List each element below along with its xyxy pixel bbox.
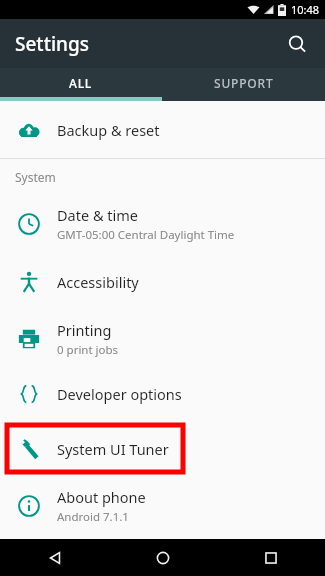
staticText: Developer options [57,384,182,404]
staticText: Settings [15,31,89,57]
staticText: System [15,169,56,185]
button[interactable]: Home [109,539,217,576]
button[interactable]: Recent apps [217,539,325,576]
staticText: 10:48 [291,2,320,17]
staticText: Printing [57,320,112,340]
button[interactable]: Date & time [0,195,325,253]
staticText: ALL [69,75,93,91]
staticText: Android 7.1.1 [57,509,129,525]
button[interactable]: Backup & reset [0,101,325,158]
staticText: About phone [57,487,146,507]
button[interactable]: ALL [0,68,162,97]
button[interactable]: Search [277,24,317,64]
button[interactable]: Accessibility [0,253,325,310]
staticText: GMT-05:00 Central Daylight Time [57,227,235,243]
staticText: Backup & reset [57,120,160,140]
button[interactable]: Back [0,539,109,576]
button[interactable]: SUPPORT [162,68,325,97]
staticText: 0 print jobs [57,342,119,358]
button[interactable]: System UI Tuner [0,420,325,477]
staticText: SUPPORT [214,75,274,91]
staticText: Date & time [57,205,138,225]
staticText: Accessibility [57,272,139,292]
button[interactable]: Printing [0,310,325,368]
button[interactable]: Developer options [0,368,325,420]
button[interactable]: About phone [0,477,325,535]
staticText: System UI Tuner [57,439,169,459]
